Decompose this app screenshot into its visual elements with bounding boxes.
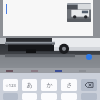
button[interactable]: さ [61,79,77,91]
button[interactable] [61,93,77,100]
staticText: か [46,81,53,89]
button[interactable] [22,93,37,100]
staticText: あ [26,81,33,89]
button[interactable] [41,93,57,100]
button[interactable]: Delete [81,79,97,91]
button[interactable]: あ [22,79,37,91]
button[interactable]: Send [86,54,92,60]
button[interactable]: か [41,79,57,91]
staticText: さ [66,81,73,89]
button[interactable]: ☆123 [3,79,18,91]
button[interactable]: Attached photo [3,0,93,36]
button[interactable]: Attached photo [67,3,91,22]
staticText: ☆123 [5,83,16,88]
